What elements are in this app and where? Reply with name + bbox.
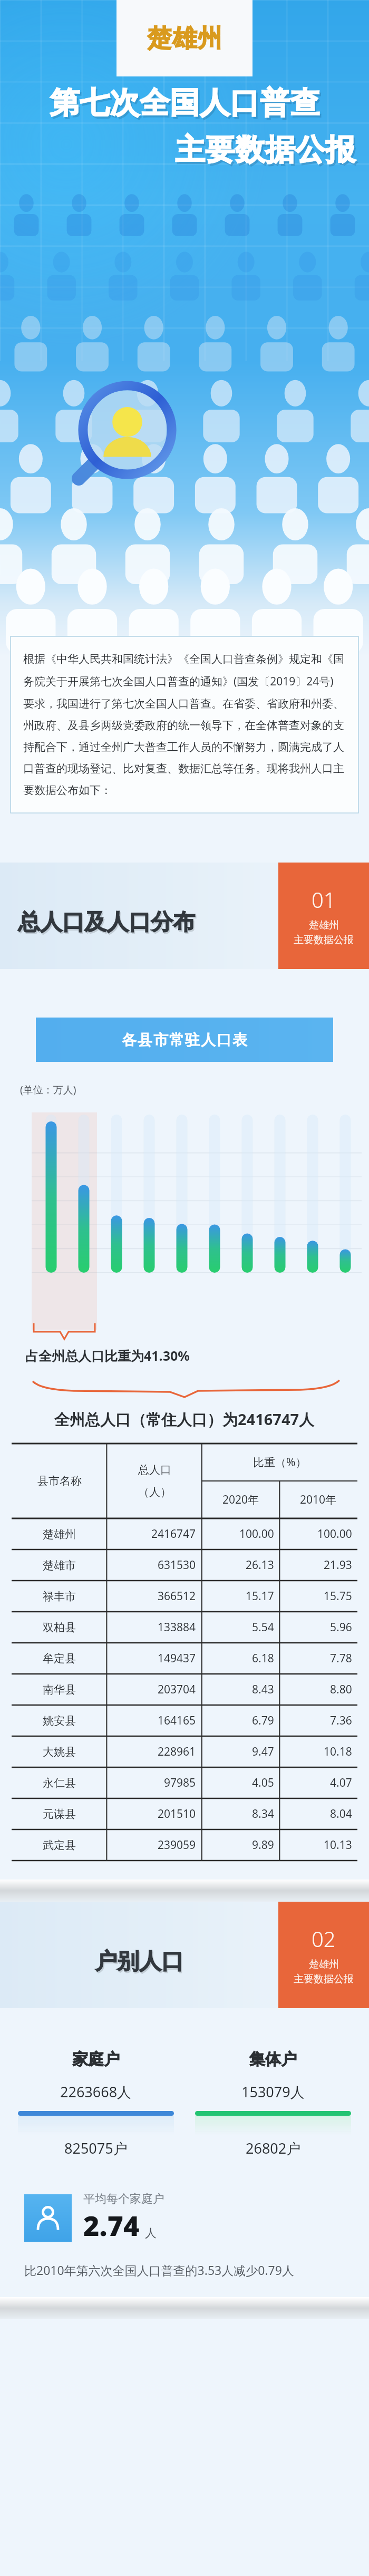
- staticText: 第七次全国人口普查: [50, 84, 320, 122]
- staticText: 牟定县: [43, 1652, 76, 1665]
- button[interactable]: Section 02: [278, 1902, 369, 2008]
- staticText: 总人口及人口分布: [18, 908, 195, 936]
- staticText: 姚安县: [43, 1714, 76, 1728]
- staticText: 第七次全国人口普查: [51, 86, 322, 124]
- button[interactable]: 根据《中华人民共和国统计法》《全国人口普查条例》规定和《国务院关于开展第七次全国…: [11, 636, 358, 813]
- staticText: 02: [312, 1924, 336, 1953]
- staticText: 6.79: [252, 1713, 274, 1728]
- button[interactable]: 家庭户: [18, 2049, 174, 2158]
- staticText: 201510: [158, 1806, 196, 1822]
- button[interactable]: 楚雄市: [12, 1550, 357, 1581]
- staticText: 100.00: [317, 1526, 352, 1542]
- staticText: 26802户: [246, 2138, 301, 2158]
- staticText: 4.07: [330, 1775, 352, 1790]
- staticText: 根据《中华人民共和国统计法》《全国人口普查条例》规定和《国务院关于开展第七次全国…: [23, 652, 346, 797]
- staticText: 10.13: [324, 1837, 352, 1853]
- staticText: 4.05: [252, 1775, 274, 1790]
- staticText: 2416747: [151, 1526, 196, 1542]
- staticText: 占全州总人口比重为41.30%: [25, 1347, 190, 1364]
- staticText: 集体户: [249, 2049, 297, 2069]
- staticText: 永仁县: [43, 1776, 76, 1790]
- staticText: 631530: [158, 1557, 196, 1573]
- staticText: 户别人口: [96, 1949, 184, 1977]
- staticText: 家庭户: [72, 2049, 120, 2069]
- staticText: 26.13: [246, 1557, 274, 1573]
- staticText: 149437: [158, 1651, 196, 1666]
- staticText: 比2010年第六次全国人口普查的3.53人减少0.79人: [24, 2262, 294, 2278]
- staticText: 5.96: [330, 1620, 352, 1635]
- staticText: 7.78: [330, 1651, 352, 1666]
- button[interactable]: 楚雄州: [12, 1518, 357, 1550]
- button[interactable]: 永仁县: [12, 1767, 357, 1798]
- staticText: 825075户: [64, 2138, 128, 2158]
- staticText: 203704: [158, 1682, 196, 1697]
- staticText: 153079人: [241, 2082, 305, 2102]
- staticText: 8.04: [330, 1806, 352, 1822]
- staticText: 366512: [158, 1589, 196, 1604]
- staticText: 大姚县: [43, 1745, 76, 1759]
- staticText: 239059: [158, 1837, 196, 1853]
- staticText: 主要数据公报: [177, 133, 357, 171]
- button[interactable]: 双柏县: [12, 1612, 357, 1643]
- other: Person: [24, 2194, 72, 2242]
- staticText: 武定县: [43, 1838, 76, 1852]
- button[interactable]: 牟定县: [12, 1643, 357, 1674]
- button[interactable]: 元谋县: [12, 1798, 357, 1829]
- staticText: 21.93: [324, 1557, 352, 1573]
- staticText: 9.89: [252, 1837, 274, 1853]
- staticText: 平均每个家庭户: [83, 2192, 164, 2206]
- staticText: 9.47: [252, 1744, 274, 1759]
- staticText: 南华县: [43, 1683, 76, 1697]
- staticText: 楚雄州: [309, 1958, 339, 1971]
- staticText: 8.43: [252, 1682, 274, 1697]
- staticText: 总人口: [138, 1463, 171, 1477]
- staticText: 2.74: [83, 2206, 140, 2244]
- staticText: 5.54: [252, 1620, 274, 1635]
- staticText: 10.18: [324, 1744, 352, 1759]
- staticText: 8.80: [330, 1682, 352, 1697]
- staticText: 7.36: [330, 1713, 352, 1728]
- staticText: 户别人口: [95, 1948, 183, 1975]
- staticText: 228961: [158, 1744, 196, 1759]
- staticText: 2263668人: [60, 2082, 132, 2102]
- button[interactable]: 集体户: [195, 2049, 351, 2158]
- staticText: 100.00: [239, 1526, 274, 1542]
- staticText: 楚雄州: [309, 919, 339, 932]
- staticText: 主要数据公报: [294, 934, 354, 946]
- staticText: 97985: [164, 1775, 196, 1790]
- staticText: 133884: [158, 1620, 196, 1635]
- staticText: 县市名称: [37, 1474, 82, 1488]
- staticText: 主要数据公报: [175, 131, 355, 169]
- button[interactable]: 禄丰市: [12, 1581, 357, 1612]
- staticText: 15.75: [324, 1589, 352, 1604]
- button[interactable]: 姚安县: [12, 1705, 357, 1736]
- staticText: 楚雄州: [43, 1527, 76, 1541]
- button[interactable]: 南华县: [12, 1674, 357, 1705]
- staticText: 164165: [158, 1713, 196, 1728]
- staticText: 6.18: [252, 1651, 274, 1666]
- staticText: (单位：万人): [20, 1083, 76, 1097]
- staticText: 01: [312, 885, 336, 914]
- button[interactable]: 大姚县: [12, 1736, 357, 1767]
- staticText: 2020年: [222, 1492, 259, 1507]
- staticText: 各县市常驻人口表: [121, 1031, 248, 1049]
- staticText: 主要数据公报: [294, 1973, 354, 1986]
- staticText: 禄丰市: [43, 1590, 76, 1603]
- staticText: 2010年: [300, 1492, 337, 1507]
- staticText: 双柏县: [43, 1621, 76, 1634]
- staticText: 总人口及人口分布: [19, 910, 196, 938]
- staticText: 元谋县: [43, 1807, 76, 1821]
- staticText: 人: [145, 2226, 157, 2241]
- staticText: 比重（%）: [253, 1455, 307, 1470]
- staticText: 楚雄市: [43, 1558, 76, 1572]
- button[interactable]: Section 01: [278, 863, 369, 969]
- staticText: 全州总人口（常住人口）为2416747人: [54, 1409, 315, 1430]
- button[interactable]: 各县市常驻人口表: [36, 1018, 333, 1062]
- staticText: 8.34: [252, 1806, 274, 1822]
- staticText: 15.17: [246, 1589, 274, 1604]
- staticText: （人）: [138, 1485, 171, 1499]
- button[interactable]: 武定县: [12, 1829, 357, 1861]
- staticText: 楚雄州: [147, 23, 222, 54]
